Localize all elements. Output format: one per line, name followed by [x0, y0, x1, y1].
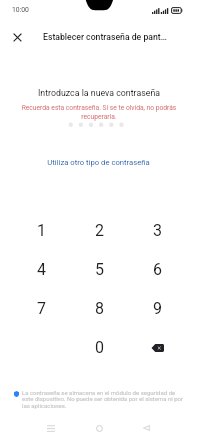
other: Borrar [151, 344, 164, 352]
staticText: La contraseña se almacena en el módulo d… [22, 389, 184, 410]
button[interactable]: 0 [70, 328, 128, 367]
button[interactable]: 8 [70, 289, 128, 328]
button[interactable]: Atrás [134, 416, 158, 440]
staticText: Introduzca la nueva contraseña [0, 88, 198, 98]
button[interactable]: 2 [70, 211, 128, 250]
button[interactable]: 1 [12, 211, 70, 250]
staticText: 8 [95, 299, 104, 318]
staticText: Utiliza otro tipo de contraseña [47, 158, 150, 167]
staticText: 0 [95, 338, 104, 357]
staticText: 6 [153, 260, 162, 279]
button[interactable]: 6 [128, 250, 186, 289]
staticText: 1 [37, 221, 46, 240]
button[interactable]: Inicio [87, 416, 111, 440]
staticText: 3 [153, 221, 162, 240]
button[interactable]: Cerrar [5, 25, 30, 50]
button[interactable]: Recientes [39, 416, 63, 440]
button[interactable]: 3 [128, 211, 186, 250]
button[interactable]: 7 [12, 289, 70, 328]
button[interactable]: 9 [128, 289, 186, 328]
staticText: 5 [95, 260, 104, 279]
staticText: 2 [95, 221, 104, 240]
button[interactable]: Borrar [128, 328, 186, 367]
staticText: 10:00 [12, 6, 29, 14]
staticText: Establecer contraseña de pant… [43, 32, 167, 42]
staticText: Recuerda esta contraseña. Si se te olvid… [0, 104, 198, 120]
staticText: 9 [153, 299, 162, 318]
staticText: 4 [37, 260, 46, 279]
staticText: 7 [37, 299, 46, 318]
button[interactable]: 5 [70, 250, 128, 289]
button[interactable]: 4 [12, 250, 70, 289]
button[interactable]: Utiliza otro tipo de contraseña [37, 152, 160, 173]
